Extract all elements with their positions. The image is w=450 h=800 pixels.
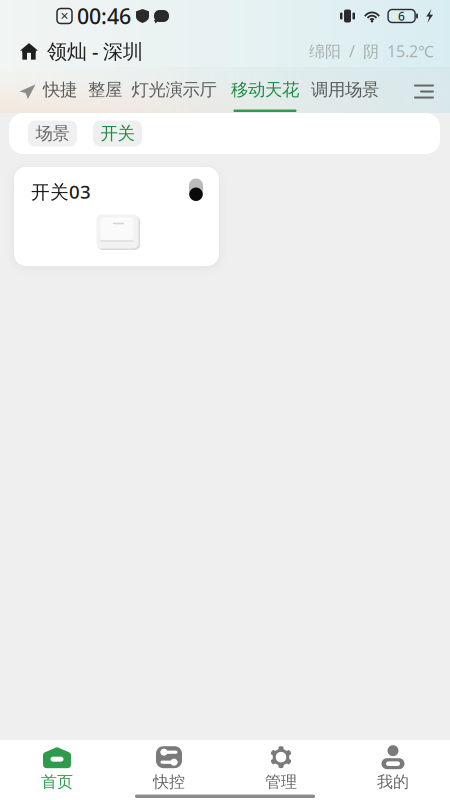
staticText: 6	[398, 8, 405, 24]
staticText: 00:46	[77, 2, 131, 30]
button[interactable]: 移动天花	[215, 70, 298, 113]
button[interactable]: 管理	[225, 740, 337, 792]
button[interactable]: 领灿 - 深圳	[0, 38, 143, 64]
staticText: 移动天花	[231, 79, 299, 100]
staticText: 领灿 - 深圳	[47, 38, 143, 64]
button[interactable]: 快控	[113, 740, 225, 792]
staticText: 场景	[35, 123, 69, 144]
button[interactable]: 快捷	[36, 70, 77, 113]
staticText: 管理	[265, 772, 297, 792]
staticText: 绵阳 / 阴 15.2℃	[309, 40, 434, 62]
staticText: 快控	[153, 772, 185, 792]
button[interactable]: 整屋	[77, 70, 122, 113]
staticText: 开关03	[31, 179, 91, 204]
button[interactable]: 首页	[1, 740, 113, 792]
staticText: 我的	[377, 772, 409, 792]
button[interactable]: More	[414, 83, 450, 99]
button[interactable]: 开关	[93, 120, 142, 146]
staticText: 灯光演示厅	[131, 79, 216, 100]
staticText: 整屋	[88, 79, 122, 100]
staticText: ✕	[60, 10, 69, 22]
staticText: 开关	[100, 123, 134, 144]
button[interactable]: 灯光演示厅	[122, 70, 215, 113]
button[interactable]: 开关03	[14, 167, 219, 266]
button[interactable]: 场景	[28, 120, 77, 146]
staticText: 首页	[41, 772, 73, 792]
staticText: 快捷	[43, 79, 77, 100]
staticText: 调用场景	[311, 79, 379, 100]
button[interactable]: 调用场景	[298, 70, 378, 113]
button[interactable]: 我的	[337, 740, 449, 792]
